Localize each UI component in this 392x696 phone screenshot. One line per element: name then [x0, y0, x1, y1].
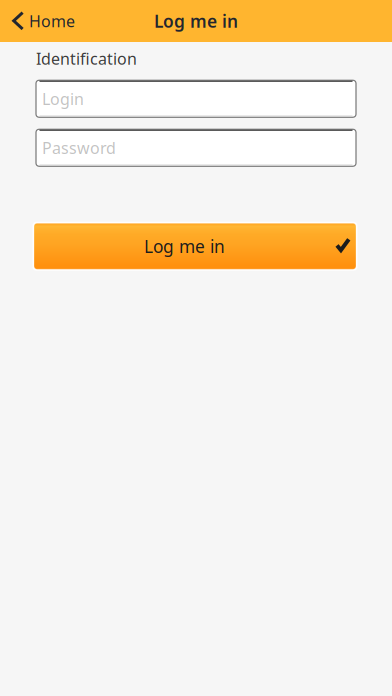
button[interactable]: Home: [0, 0, 85, 42]
staticText: Login: [42, 88, 84, 109]
staticText: Home: [29, 10, 75, 32]
staticText: Log me in: [144, 235, 225, 258]
staticText: Identification: [36, 48, 137, 69]
button[interactable]: Password: [36, 129, 356, 166]
staticText: Log me in: [154, 9, 238, 32]
button[interactable]: Login: [36, 80, 356, 117]
button[interactable]: Log me in: [32, 222, 357, 271]
staticText: Password: [42, 137, 116, 158]
